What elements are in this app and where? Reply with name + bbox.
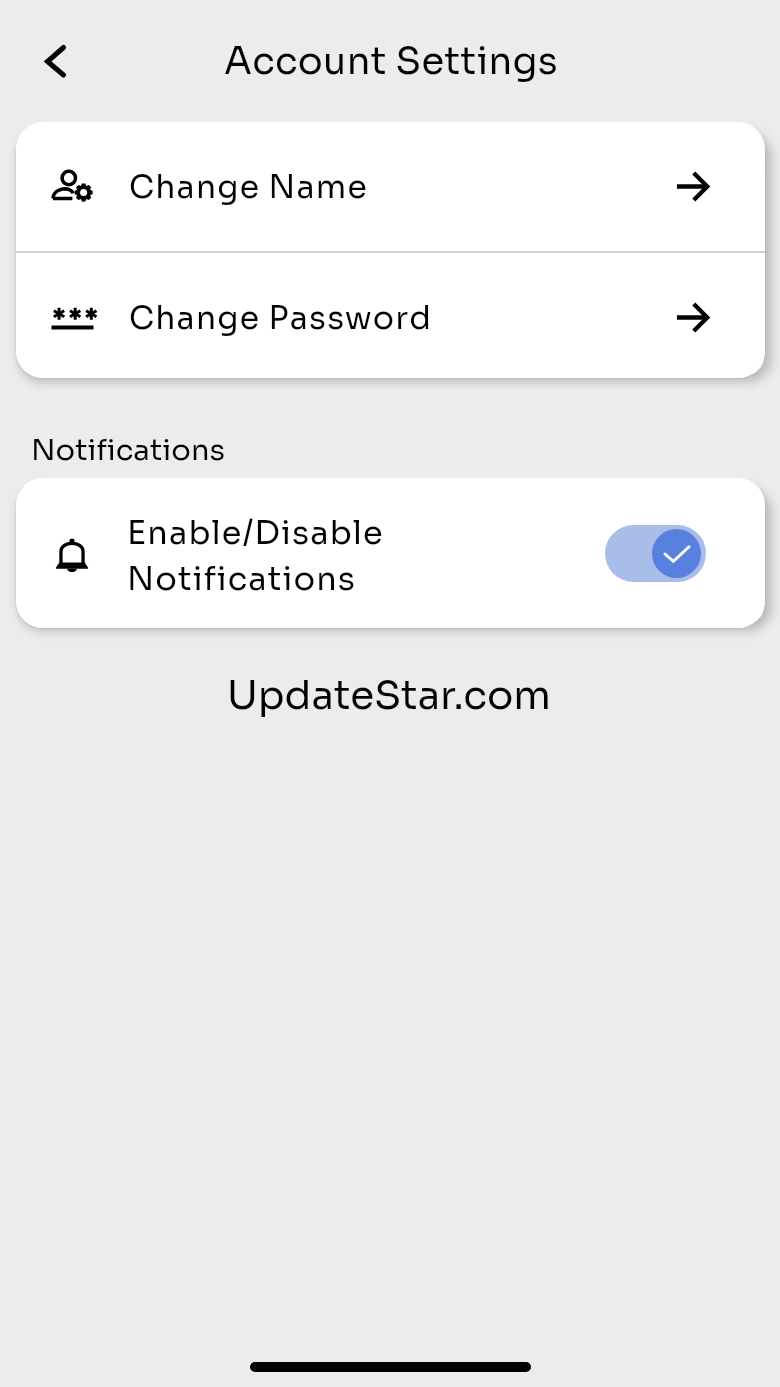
staticText: Change Name xyxy=(129,167,599,207)
other: Open Change Password xyxy=(599,253,764,378)
other: Open Change Name xyxy=(599,122,764,251)
button[interactable]: Change Password xyxy=(16,253,765,378)
staticText: Enable/Disable Notifications xyxy=(127,513,384,600)
staticText: Change Password xyxy=(129,298,599,338)
button[interactable]: Change Name xyxy=(16,122,765,251)
button[interactable]: Toggle notifications xyxy=(605,525,706,582)
staticText: Account Settings xyxy=(1,38,780,85)
staticText: UpdateStar.com xyxy=(0,671,779,720)
button[interactable]: Enable/Disable Notifications xyxy=(16,478,765,628)
button[interactable]: Back xyxy=(20,30,86,96)
staticText: Notifications xyxy=(31,432,225,469)
